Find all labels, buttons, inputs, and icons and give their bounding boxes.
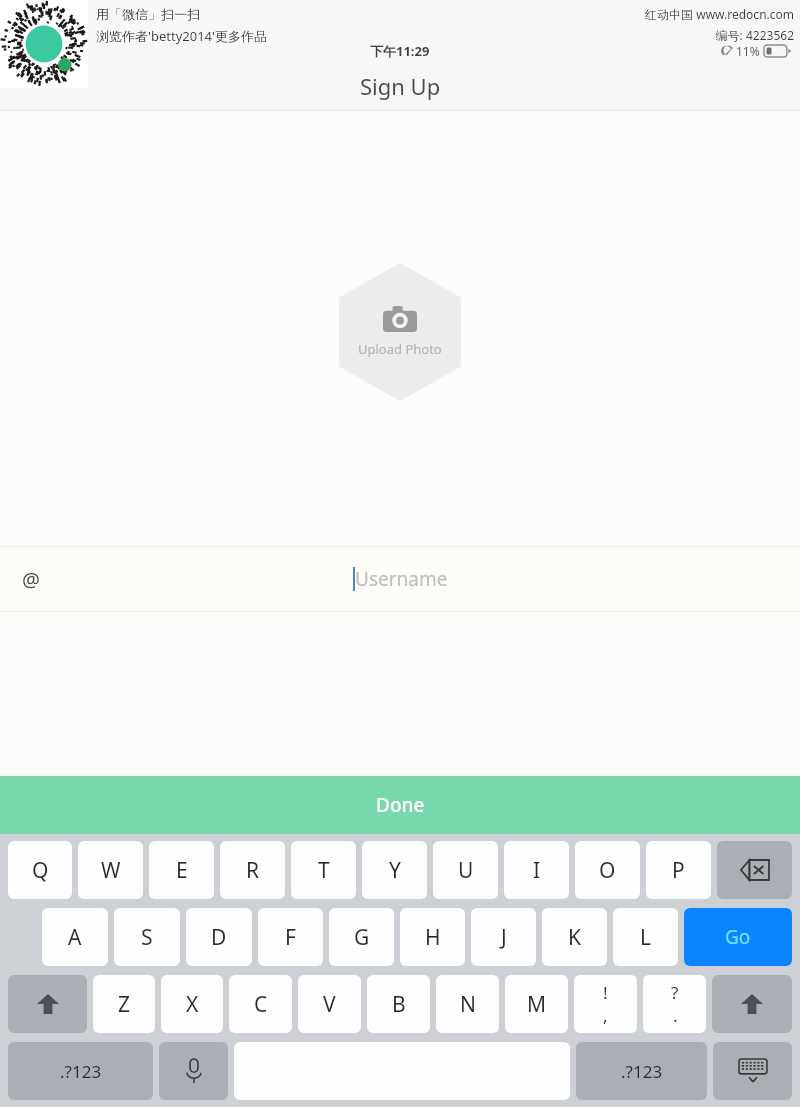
button[interactable]: T bbox=[291, 841, 356, 899]
button[interactable]: F bbox=[258, 908, 323, 966]
button[interactable]: .?123 bbox=[576, 1042, 707, 1100]
button[interactable]: Done bbox=[0, 776, 800, 834]
staticText: G bbox=[354, 923, 370, 952]
button[interactable]: Dictate bbox=[159, 1042, 228, 1100]
staticText: .?123 bbox=[621, 1060, 663, 1083]
staticText: @ bbox=[22, 566, 40, 593]
button[interactable]: O bbox=[575, 841, 640, 899]
button[interactable]: K bbox=[542, 908, 607, 966]
button[interactable]: J bbox=[471, 908, 536, 966]
button[interactable]: L bbox=[613, 908, 678, 966]
button[interactable]: W bbox=[78, 841, 143, 899]
staticText: K bbox=[568, 923, 581, 952]
button[interactable]: Backspace bbox=[717, 841, 792, 899]
button[interactable]: ? bbox=[643, 975, 706, 1033]
button[interactable]: A bbox=[42, 908, 108, 966]
staticText: Y bbox=[389, 856, 401, 885]
button[interactable]: I bbox=[504, 841, 569, 899]
button[interactable]: C bbox=[229, 975, 292, 1033]
button[interactable]: Q bbox=[8, 841, 72, 899]
staticText: S bbox=[141, 923, 153, 952]
button[interactable]: N bbox=[436, 975, 499, 1033]
staticText: Username bbox=[355, 566, 448, 592]
staticText: V bbox=[323, 990, 336, 1019]
staticText: A bbox=[68, 923, 82, 952]
staticText: ! bbox=[603, 981, 608, 1004]
button[interactable]: Go bbox=[684, 908, 792, 966]
button[interactable]: H bbox=[400, 908, 465, 966]
staticText: 红动中国 www.redocn.com bbox=[645, 6, 794, 22]
button[interactable]: D bbox=[186, 908, 252, 966]
staticText: P bbox=[672, 856, 685, 885]
staticText: Done bbox=[376, 792, 425, 818]
button[interactable]: Hide keyboard bbox=[713, 1042, 792, 1100]
staticText: B bbox=[392, 990, 406, 1019]
staticText: Q bbox=[32, 856, 49, 885]
staticText: X bbox=[186, 990, 199, 1019]
staticText: W bbox=[101, 856, 121, 885]
button[interactable]: Shift bbox=[8, 975, 87, 1033]
button[interactable]: ! bbox=[574, 975, 637, 1033]
staticText: ? bbox=[671, 981, 679, 1004]
button[interactable]: X bbox=[161, 975, 223, 1033]
button[interactable]: R bbox=[220, 841, 285, 899]
button[interactable]: S bbox=[114, 908, 180, 966]
button[interactable]: Upload Photo bbox=[339, 263, 461, 401]
staticText: 编号: 4223562 bbox=[715, 27, 794, 43]
staticText: F bbox=[285, 923, 296, 952]
button[interactable]: Shift bbox=[712, 975, 792, 1033]
button[interactable]: G bbox=[329, 908, 394, 966]
staticText: Go bbox=[725, 924, 751, 950]
staticText: D bbox=[211, 923, 227, 952]
staticText: , bbox=[603, 1004, 608, 1027]
staticText: C bbox=[254, 990, 268, 1019]
staticText: L bbox=[640, 923, 652, 952]
button[interactable]: B bbox=[367, 975, 430, 1033]
staticText: J bbox=[501, 923, 507, 952]
button[interactable]: V bbox=[298, 975, 361, 1033]
staticText: 11% bbox=[736, 43, 760, 59]
button[interactable]: Z bbox=[93, 975, 155, 1033]
button[interactable]: E bbox=[149, 841, 214, 899]
staticText: M bbox=[527, 990, 547, 1019]
button[interactable]: P bbox=[646, 841, 711, 899]
staticText: 用「微信」扫一扫 bbox=[96, 6, 200, 22]
staticText: Upload Photo bbox=[358, 340, 442, 358]
button[interactable]: .?123 bbox=[8, 1042, 153, 1100]
staticText: E bbox=[176, 856, 188, 885]
staticText: 浏览作者'betty2014'更多作品 bbox=[96, 27, 267, 45]
staticText: U bbox=[458, 856, 474, 885]
button[interactable]: @ bbox=[0, 546, 800, 612]
button[interactable]: U bbox=[433, 841, 498, 899]
staticText: O bbox=[599, 856, 616, 885]
staticText: . bbox=[673, 1004, 678, 1027]
staticText: H bbox=[425, 923, 441, 952]
staticText: I bbox=[533, 856, 541, 885]
staticText: R bbox=[246, 856, 260, 885]
staticText: N bbox=[460, 990, 476, 1019]
staticText: .?123 bbox=[60, 1060, 102, 1083]
staticText: 下午11:29 bbox=[370, 42, 430, 60]
staticText: Sign Up bbox=[360, 71, 441, 101]
button[interactable]: M bbox=[505, 975, 568, 1033]
staticText: Z bbox=[118, 990, 131, 1019]
staticText: T bbox=[318, 856, 330, 885]
button[interactable]: Y bbox=[362, 841, 427, 899]
